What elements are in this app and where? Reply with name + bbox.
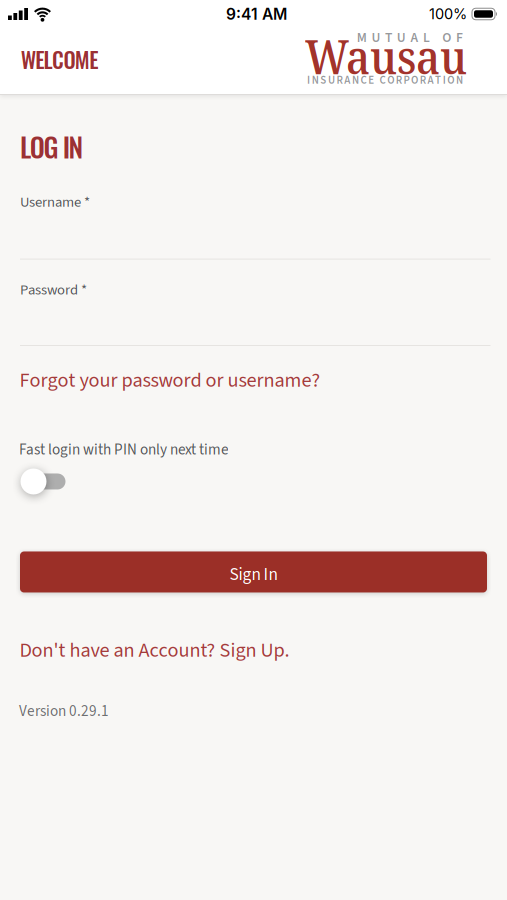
staticText: C	[379, 72, 385, 88]
staticText: N	[312, 72, 319, 88]
staticText: Username *	[20, 192, 90, 213]
staticText: N	[456, 72, 463, 88]
staticText: E	[368, 72, 374, 88]
staticText: U	[371, 28, 380, 47]
staticText: O	[30, 126, 45, 166]
staticText: Sign In	[229, 562, 277, 587]
staticText: N	[352, 72, 359, 88]
staticText: M	[75, 43, 90, 75]
staticText: 9:41 AM	[226, 5, 287, 23]
staticText: T	[385, 28, 392, 47]
staticText: O	[442, 28, 451, 47]
staticText: I	[443, 72, 446, 88]
staticText: E	[89, 43, 98, 75]
staticText: L	[423, 28, 430, 47]
staticText: W	[21, 43, 36, 75]
staticText: U	[328, 72, 335, 88]
staticText: O	[63, 43, 75, 75]
staticText: L	[44, 43, 53, 75]
staticText: A	[410, 28, 418, 47]
button[interactable]: Fast login with PIN only next time	[20, 468, 66, 494]
staticText: S	[320, 72, 326, 88]
staticText: C	[52, 43, 64, 75]
staticText: E	[35, 43, 44, 75]
staticText: A	[344, 72, 350, 88]
staticText: Don't have an Account? Sign Up.	[19, 636, 289, 665]
staticText: R	[420, 72, 426, 88]
staticText: Version 0.29.1	[19, 700, 109, 722]
staticText: A	[427, 72, 433, 88]
staticText: T	[435, 72, 441, 88]
staticText: I	[63, 126, 70, 166]
staticText: Password *	[20, 280, 87, 300]
staticText: I	[307, 72, 310, 88]
staticText: Forgot your password or username?	[19, 366, 320, 395]
button[interactable]: Sign In	[20, 551, 487, 592]
staticText: F	[456, 28, 463, 47]
staticText: Fast login with PIN only next time	[19, 439, 229, 460]
staticText: Wausau	[305, 24, 467, 88]
staticText: L	[20, 126, 31, 166]
staticText: G	[43, 126, 58, 166]
button[interactable]: Forgot your password or username?	[19, 366, 320, 395]
staticText: C	[361, 72, 367, 88]
staticText	[57, 126, 64, 166]
staticText: U	[397, 28, 406, 47]
staticText: R	[337, 72, 343, 88]
staticText: O	[387, 72, 394, 88]
button[interactable]: Don't have an Account? Sign Up.	[19, 636, 289, 665]
staticText: R	[396, 72, 402, 88]
staticText: N	[68, 126, 83, 166]
staticText: M	[357, 28, 367, 47]
staticText: P	[403, 72, 409, 88]
staticText: O	[447, 72, 454, 88]
staticText	[376, 72, 378, 88]
staticText: O	[411, 72, 418, 88]
staticText: 100%	[429, 5, 467, 23]
